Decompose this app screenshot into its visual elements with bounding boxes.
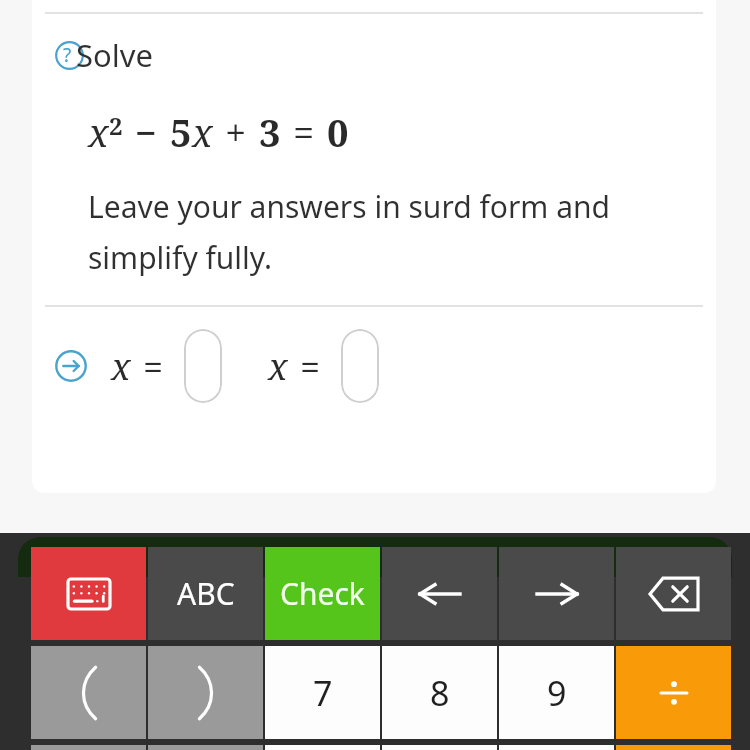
- button[interactable]: Move left: [382, 547, 497, 640]
- other: Help: [55, 41, 84, 70]
- staticText: −: [135, 106, 158, 158]
- staticText: =: [300, 342, 321, 391]
- button[interactable]: Divide: [616, 646, 731, 739]
- staticText: Solve: [76, 34, 154, 76]
- button[interactable]: ABC: [148, 547, 263, 640]
- staticText: =: [293, 106, 315, 158]
- staticText: ABC: [177, 573, 235, 614]
- button[interactable]: Submit answer: [55, 350, 87, 382]
- button[interactable]: Hide keyboard: [31, 547, 146, 640]
- staticText: 2: [109, 109, 123, 142]
- button[interactable]: 7: [265, 646, 380, 739]
- staticText: 3: [259, 106, 281, 158]
- staticText: x: [111, 342, 131, 391]
- staticText: 8: [430, 670, 450, 716]
- other: Move left: [415, 576, 465, 612]
- other: Backspace: [649, 576, 699, 612]
- staticText: 5: [170, 106, 192, 158]
- staticText: 9: [547, 670, 567, 716]
- staticText: +: [225, 106, 247, 158]
- other: Open parenthesis: [74, 665, 104, 721]
- staticText: Check: [280, 573, 365, 614]
- staticText: x: [268, 342, 288, 391]
- other: Divide: [657, 676, 691, 710]
- staticText: simplify fully.: [88, 237, 272, 278]
- button[interactable]: Check: [265, 547, 380, 640]
- staticText: ?: [63, 42, 72, 68]
- button[interactable]: 9: [499, 646, 614, 739]
- staticText: =: [143, 342, 164, 391]
- staticText: 0: [327, 106, 349, 158]
- other: Move right: [532, 576, 582, 612]
- button[interactable]: Move right: [499, 547, 614, 640]
- staticText: 7: [313, 670, 333, 716]
- staticText: x: [88, 106, 109, 158]
- button[interactable]: Backspace: [616, 547, 731, 640]
- button[interactable]: Open parenthesis: [31, 646, 146, 739]
- button[interactable]: Answer input: [184, 329, 222, 403]
- other: Hide keyboard: [66, 577, 112, 611]
- other: Close parenthesis: [191, 665, 221, 721]
- staticText: Leave your answers in surd form and: [88, 186, 610, 227]
- button[interactable]: Help: [55, 34, 171, 76]
- button[interactable]: Answer input: [341, 329, 379, 403]
- staticText: x: [192, 106, 213, 158]
- button[interactable]: Close parenthesis: [148, 646, 263, 739]
- button[interactable]: 8: [382, 646, 497, 739]
